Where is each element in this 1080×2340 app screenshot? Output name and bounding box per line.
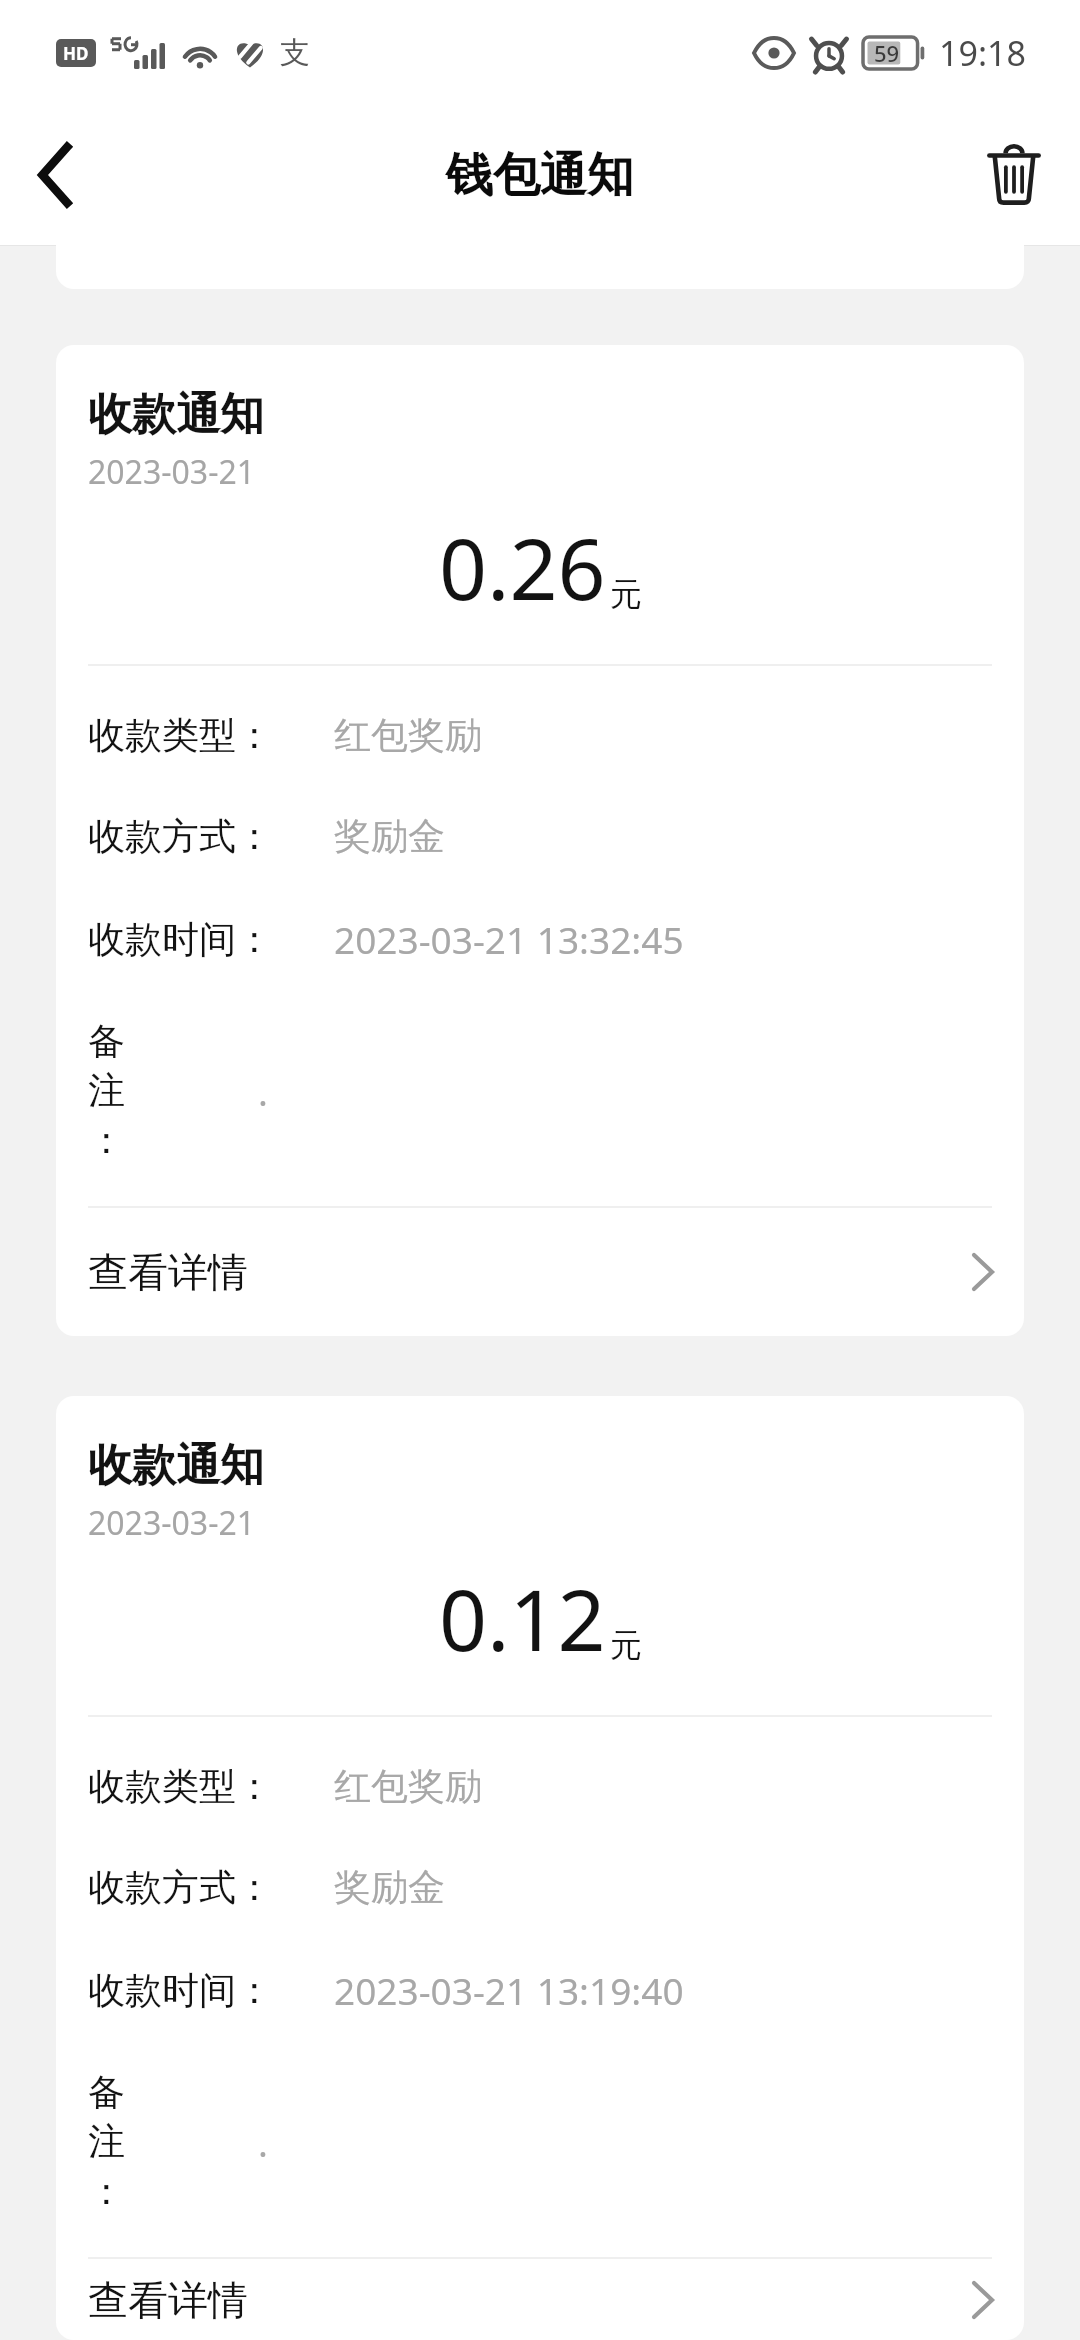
staticText: 钱包通知 bbox=[446, 146, 634, 205]
staticText: 奖励金 bbox=[334, 813, 445, 860]
staticText: HD bbox=[63, 42, 89, 65]
staticText: 2023-03-21 bbox=[88, 450, 256, 494]
staticText: 19:18 bbox=[939, 30, 1026, 76]
staticText: . bbox=[258, 1066, 268, 1116]
staticText: 收款通知 bbox=[88, 1438, 264, 1493]
staticText: 2023-03-21 13:32:45 bbox=[334, 914, 684, 964]
button[interactable]: 查看详情 bbox=[56, 2259, 1024, 2340]
staticText: 0.12 bbox=[439, 1561, 606, 1675]
button[interactable]: Delete bbox=[966, 127, 1062, 223]
button[interactable]: 收款通知 bbox=[56, 345, 1024, 1336]
staticText: 收款时间： bbox=[88, 916, 273, 963]
staticText: 59 bbox=[874, 38, 900, 68]
staticText: 收款方式： bbox=[88, 813, 273, 860]
staticText: 收款方式： bbox=[88, 1864, 273, 1911]
staticText: 0.26 bbox=[439, 510, 606, 624]
staticText: 支 bbox=[280, 34, 310, 72]
staticText: 查看详情 bbox=[88, 1247, 248, 1297]
staticText: 2023-03-21 bbox=[88, 1501, 256, 1545]
staticText: 查看详情 bbox=[88, 2275, 248, 2325]
staticText: 收款通知 bbox=[88, 387, 264, 442]
staticText: 红包奖励 bbox=[334, 1763, 482, 1810]
button[interactable]: Back bbox=[8, 127, 104, 223]
button[interactable]: 查看详情 bbox=[56, 1208, 1024, 1336]
staticText: 收款类型： bbox=[88, 1763, 273, 1810]
staticText: 奖励金 bbox=[334, 1864, 445, 1911]
staticText: 元 bbox=[610, 1625, 642, 1665]
staticText: 元 bbox=[610, 574, 642, 614]
staticText: 2023-03-21 13:19:40 bbox=[334, 1965, 684, 2015]
staticText: 收款时间： bbox=[88, 1967, 273, 2014]
staticText: 收款类型： bbox=[88, 712, 273, 759]
button[interactable]: 收款通知 bbox=[56, 1396, 1024, 2340]
staticText: . bbox=[258, 2117, 268, 2167]
staticText: 红包奖励 bbox=[334, 712, 482, 759]
